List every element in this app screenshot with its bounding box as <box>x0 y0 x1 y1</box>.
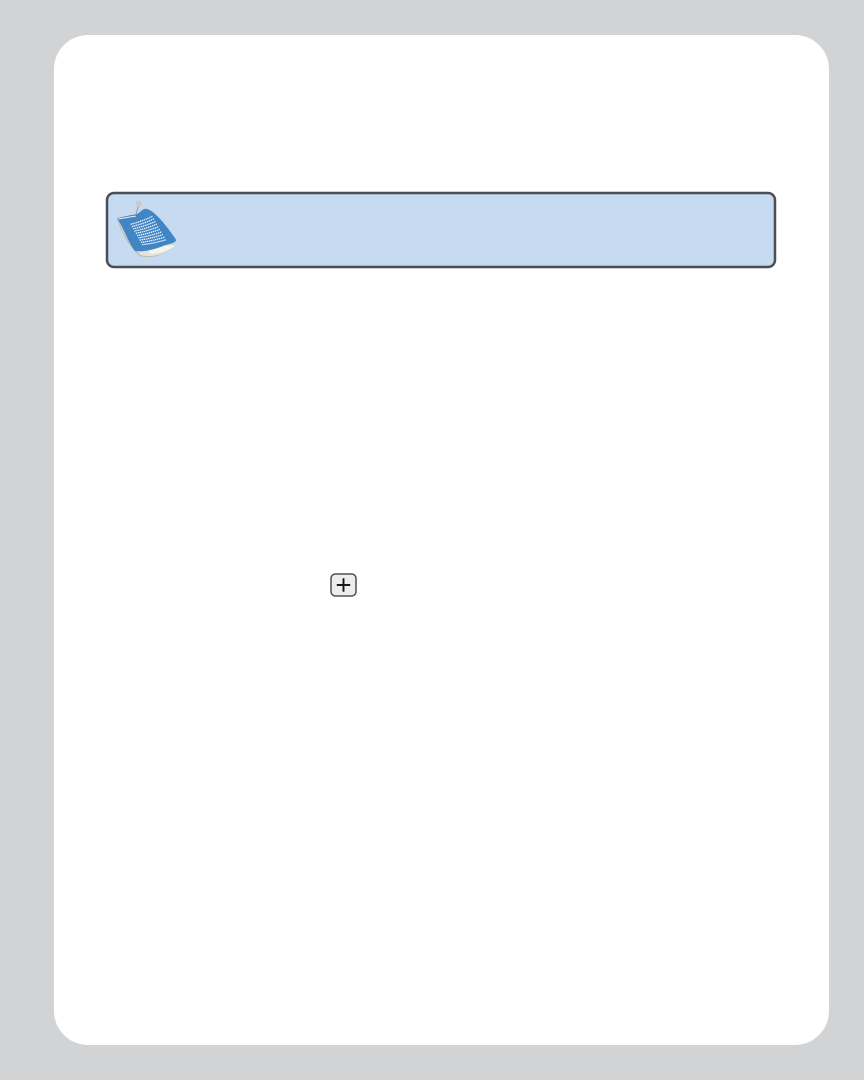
button[interactable]: Add <box>331 574 356 596</box>
button[interactable]: Note <box>107 193 775 267</box>
